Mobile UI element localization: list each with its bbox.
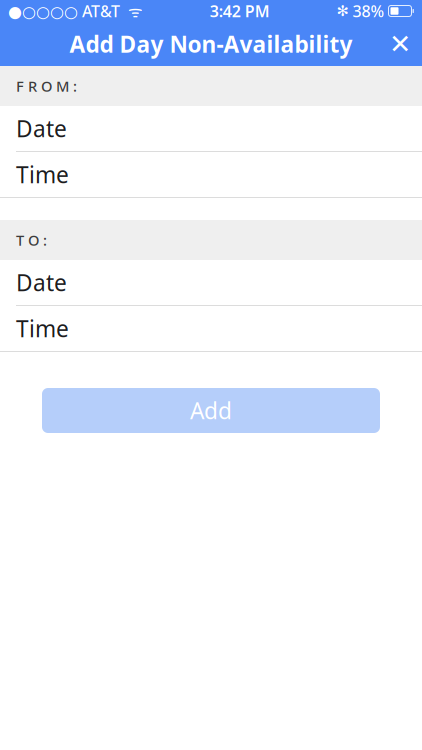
staticText: Date [16, 267, 67, 297]
staticText: Time [16, 313, 69, 343]
button[interactable]: Date [0, 260, 422, 305]
button[interactable]: Time [0, 152, 422, 197]
staticText: 3:42 PM [210, 0, 270, 22]
button[interactable]: Close [378, 22, 422, 66]
staticText: F R O M : [16, 76, 77, 96]
staticText: ●○○○○ AT&T ᯤ [8, 0, 143, 22]
staticText: Add Day Non-Availability [69, 29, 352, 59]
staticText: ✻ [336, 3, 348, 19]
staticText: ✕ [389, 29, 411, 59]
staticText: Date [16, 113, 67, 143]
staticText: Add [190, 395, 232, 425]
staticText: 38% [352, 0, 384, 22]
staticText: Time [16, 159, 69, 189]
button[interactable]: Date [0, 106, 422, 151]
button[interactable]: Time [0, 306, 422, 351]
button[interactable]: Add [42, 388, 380, 433]
staticText: T O : [16, 230, 47, 250]
